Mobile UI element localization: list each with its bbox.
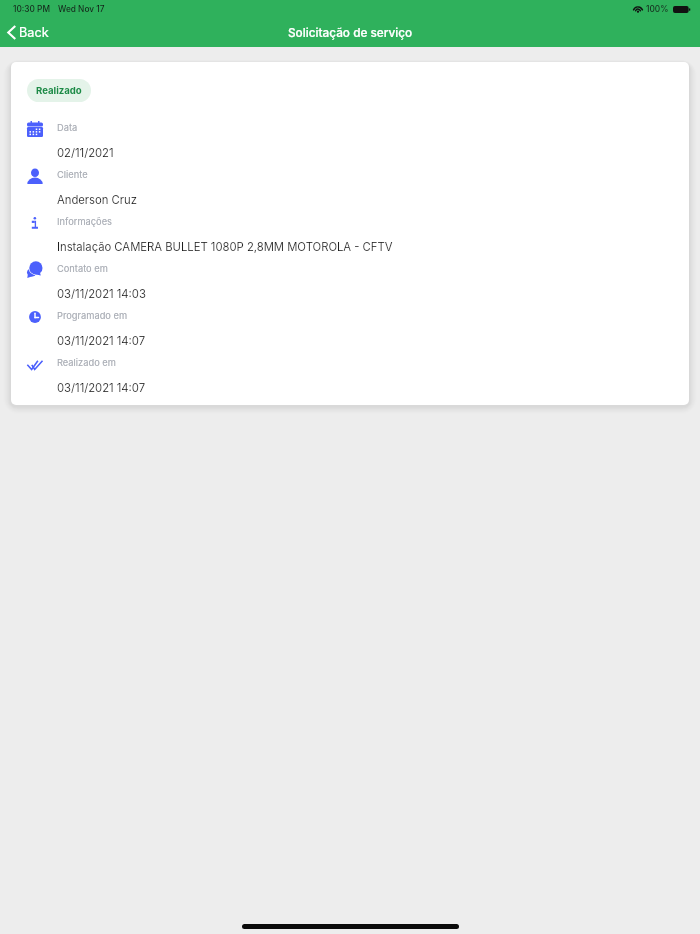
staticText: Wed Nov 17: [58, 4, 105, 14]
staticText: Solicitação de serviço: [288, 26, 413, 40]
staticText: Anderson Cruz: [57, 193, 137, 207]
staticText: 03/11/2021 14:07: [57, 334, 146, 348]
staticText: Instalação CAMERA BULLET 1080P 2,8MM MOT…: [57, 240, 393, 254]
staticText: Contato em: [57, 263, 108, 274]
staticText: 03/11/2021 14:07: [57, 381, 146, 395]
staticText: Informações: [57, 216, 112, 227]
staticText: Back: [19, 25, 49, 40]
staticText: Realizado em: [57, 357, 116, 368]
staticText: 03/11/2021 14:03: [57, 287, 146, 301]
staticText: Programado em: [57, 310, 128, 321]
button[interactable]: Realizado: [27, 79, 91, 102]
staticText: 02/11/2021: [57, 146, 114, 160]
staticText: Data: [57, 122, 78, 133]
staticText: Cliente: [57, 169, 88, 180]
staticText: 100%: [646, 4, 669, 14]
staticText: Realizado: [36, 85, 82, 97]
button[interactable]: Back: [1, 21, 55, 44]
staticText: 10:30 PM: [13, 4, 50, 14]
